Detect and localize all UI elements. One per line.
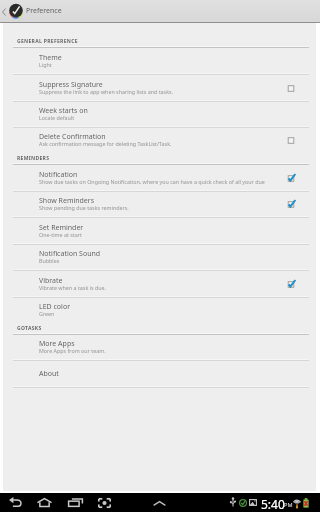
staticText: Notification Sound: [39, 249, 101, 259]
staticText: Vibrate when a task is due.: [39, 284, 106, 291]
staticText: Show Reminders: [39, 196, 95, 206]
button[interactable]: Theme: [3, 48, 316, 75]
staticText: One-time at start: [39, 231, 82, 238]
staticText: Delete Confirmation: [39, 132, 106, 142]
button[interactable]: More Apps: [3, 335, 316, 361]
staticText: GENERAL PREFERENCE: [17, 38, 78, 45]
staticText: Light: [39, 61, 52, 68]
button[interactable]: Navigate up: [0, 0, 23, 23]
button[interactable]: About: [3, 361, 316, 388]
staticText: LED color: [39, 302, 71, 312]
button[interactable]: Screenshot: [95, 495, 113, 510]
staticText: Set Reminder: [39, 223, 84, 233]
staticText: Vibrate: [39, 276, 63, 286]
staticText: Show pending due tasks reminders.: [39, 204, 129, 211]
staticText: 5:40: [261, 496, 285, 512]
staticText: More Apps from our team.: [39, 347, 106, 354]
button[interactable]: Notification: [3, 165, 316, 192]
button[interactable]: Home: [35, 495, 53, 510]
staticText: Suppress the link to app when sharing li…: [39, 88, 174, 95]
staticText: Green: [39, 310, 55, 317]
staticText: Ask confirmation message for deleting Ta…: [39, 140, 172, 147]
staticText: Show due tasks on Ongoing Notification, …: [39, 178, 280, 185]
button[interactable]: Show keyboard: [152, 499, 166, 507]
staticText: More Apps: [39, 339, 75, 349]
button[interactable]: Week starts on: [3, 102, 316, 128]
button[interactable]: Delete Confirmation: [3, 128, 316, 154]
button[interactable]: Set Reminder: [3, 218, 316, 245]
button[interactable]: Vibrate: [3, 271, 316, 298]
button[interactable]: Show Reminders: [3, 192, 316, 218]
staticText: Theme: [39, 53, 62, 63]
staticText: PM: [284, 501, 293, 509]
staticText: About: [39, 369, 59, 379]
button[interactable]: Suppress Signature: [3, 75, 316, 102]
staticText: Bubbles: [39, 257, 60, 264]
staticText: Week starts on: [39, 106, 88, 116]
staticText: REMINDERS: [17, 155, 50, 162]
button[interactable]: Recent apps: [66, 495, 84, 510]
staticText: Locale default: [39, 114, 75, 121]
button[interactable]: LED color: [3, 298, 316, 324]
staticText: Preference: [26, 6, 62, 16]
button[interactable]: Back: [6, 495, 24, 510]
staticText: Notification: [39, 170, 78, 180]
button[interactable]: Notification Sound: [3, 245, 316, 271]
staticText: Suppress Signature: [39, 80, 103, 90]
staticText: GOTASKS: [17, 325, 42, 332]
